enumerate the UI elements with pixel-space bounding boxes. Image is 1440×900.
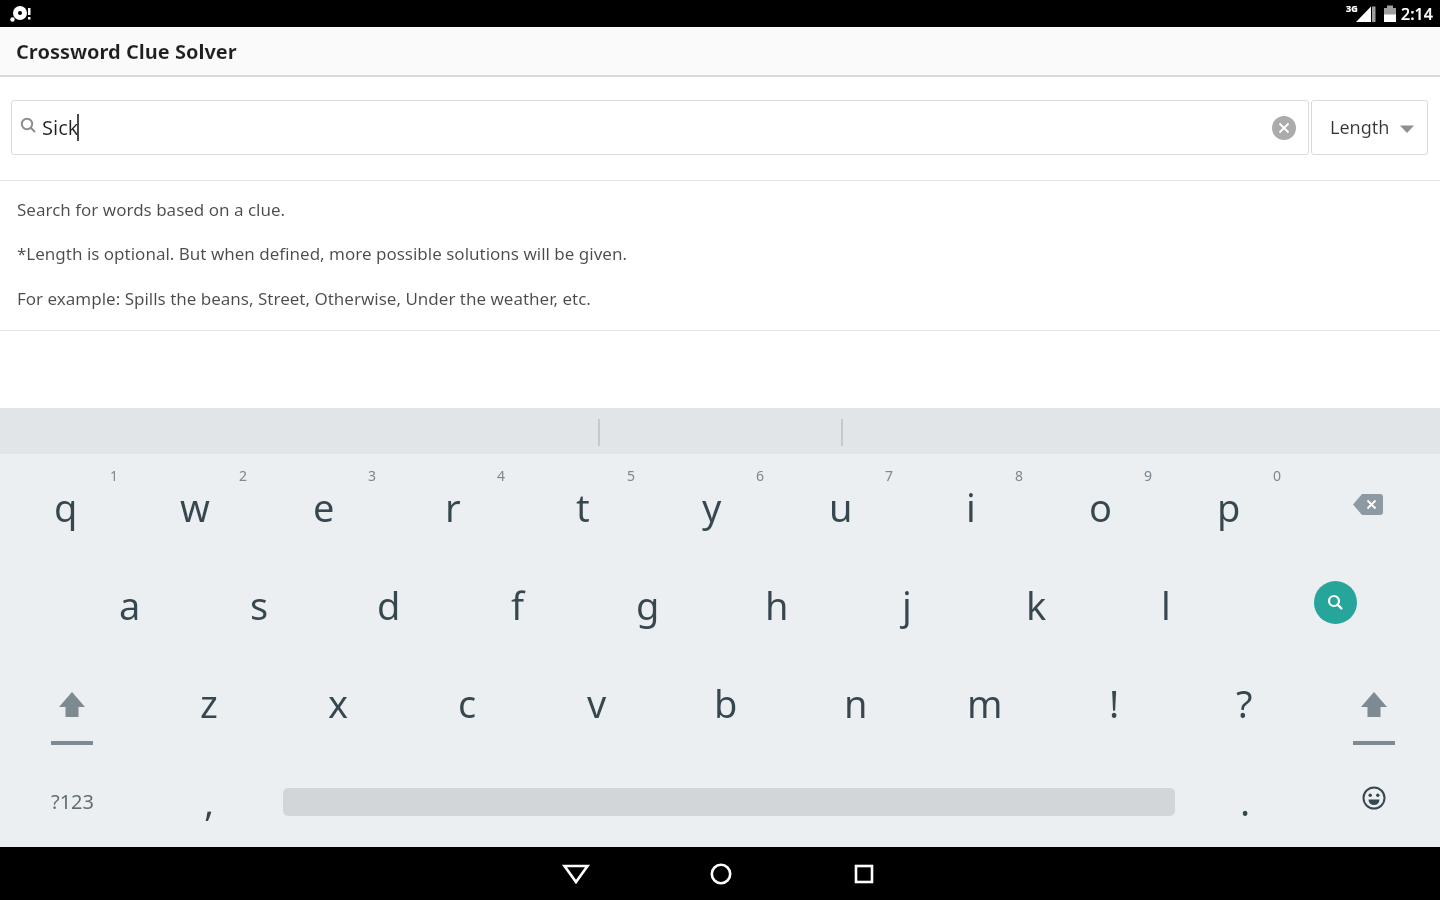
- staticText: k: [1026, 579, 1047, 631]
- button[interactable]: e: [269, 455, 379, 553]
- button[interactable]: r: [398, 455, 508, 553]
- staticText: d: [377, 579, 401, 631]
- button[interactable]: m: [930, 651, 1040, 749]
- button[interactable]: o: [1045, 455, 1155, 553]
- staticText: 3G: [1346, 2, 1358, 14]
- staticText: a: [119, 579, 141, 631]
- button[interactable]: n: [801, 651, 911, 749]
- staticText: 7: [885, 466, 894, 485]
- staticText: v: [587, 677, 607, 729]
- staticText: Search for words based on a clue.: [17, 198, 286, 221]
- button[interactable]: [1272, 116, 1296, 140]
- staticText: h: [765, 579, 789, 631]
- staticText: 2:14: [1401, 3, 1433, 25]
- staticText: s: [250, 579, 269, 631]
- button[interactable]: [824, 847, 904, 900]
- staticText: n: [844, 677, 868, 729]
- staticText: 1: [110, 466, 119, 485]
- staticText: e: [313, 481, 335, 533]
- button[interactable]: s: [204, 553, 314, 651]
- staticText: g: [636, 579, 660, 631]
- staticText: Length: [1330, 115, 1390, 140]
- button[interactable]: p: [1174, 455, 1284, 553]
- button[interactable]: !: [1059, 651, 1169, 749]
- button[interactable]: j: [852, 553, 962, 651]
- staticText: Crossword Clue Solver: [16, 38, 237, 65]
- staticText: y: [702, 481, 722, 533]
- staticText: l: [1161, 579, 1171, 631]
- button[interactable]: d: [334, 553, 444, 651]
- staticText: 9: [1144, 466, 1153, 485]
- staticText: 4: [497, 466, 506, 485]
- button[interactable]: b: [671, 651, 781, 749]
- button[interactable]: k: [981, 553, 1091, 651]
- staticText: 3: [368, 466, 377, 485]
- staticText: c: [458, 677, 477, 729]
- button[interactable]: z: [154, 651, 264, 749]
- button[interactable]: [1319, 651, 1429, 749]
- staticText: ?: [1236, 677, 1253, 729]
- staticText: 8: [1015, 466, 1024, 485]
- button[interactable]: v: [542, 651, 652, 749]
- staticText: i: [966, 481, 976, 533]
- button[interactable]: a: [75, 553, 185, 651]
- staticText: t: [576, 481, 590, 533]
- button[interactable]: i: [916, 455, 1026, 553]
- staticText: f: [511, 579, 525, 631]
- button[interactable]: .: [1190, 749, 1300, 847]
- staticText: j: [902, 579, 912, 631]
- staticText: ?123: [51, 788, 94, 815]
- button[interactable]: c: [412, 651, 522, 749]
- button[interactable]: f: [463, 553, 573, 651]
- button[interactable]: ?123: [17, 749, 127, 847]
- button[interactable]: q: [11, 455, 121, 553]
- button[interactable]: [1292, 559, 1378, 645]
- button[interactable]: [681, 847, 761, 900]
- button[interactable]: y: [657, 455, 767, 553]
- staticText: z: [200, 677, 218, 729]
- button[interactable]: h: [722, 553, 832, 651]
- staticText: 2: [239, 466, 248, 485]
- button[interactable]: Length: [1311, 100, 1428, 155]
- staticText: m: [967, 677, 1003, 729]
- button[interactable]: [1319, 749, 1429, 847]
- button[interactable]: t: [528, 455, 638, 553]
- staticText: 5: [627, 466, 636, 485]
- button[interactable]: w: [140, 455, 250, 553]
- button[interactable]: [17, 651, 127, 749]
- button[interactable]: g: [593, 553, 703, 651]
- button[interactable]: l: [1111, 553, 1221, 651]
- button[interactable]: [1313, 455, 1423, 553]
- button[interactable]: x: [283, 651, 393, 749]
- button[interactable]: u: [786, 455, 896, 553]
- staticText: .: [1240, 775, 1251, 827]
- staticText: x: [328, 677, 349, 729]
- staticText: r: [445, 481, 461, 533]
- staticText: u: [829, 481, 853, 533]
- staticText: p: [1217, 481, 1241, 533]
- button[interactable]: [11, 100, 1309, 155]
- button[interactable]: ?: [1189, 651, 1299, 749]
- staticText: q: [54, 481, 78, 533]
- staticText: !: [1109, 677, 1120, 729]
- staticText: ,: [204, 775, 215, 827]
- staticText: Sick: [42, 114, 79, 141]
- staticText: 0: [1273, 466, 1282, 485]
- button[interactable]: [536, 847, 616, 900]
- staticText: 6: [756, 466, 765, 485]
- staticText: For example: Spills the beans, Street, O…: [17, 287, 591, 310]
- staticText: w: [180, 481, 210, 533]
- staticText: b: [714, 677, 738, 729]
- button[interactable]: ,: [154, 749, 264, 847]
- staticText: o: [1089, 481, 1112, 533]
- staticText: *Length is optional. But when defined, m…: [17, 242, 627, 265]
